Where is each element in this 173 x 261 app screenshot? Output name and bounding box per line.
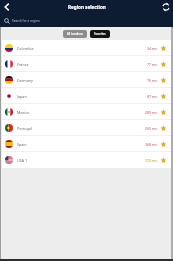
button[interactable]: Favorite [160, 157, 167, 164]
staticText: 34 ms [147, 46, 157, 51]
staticText: Germany [17, 78, 33, 83]
button[interactable]: Spain [2, 136, 171, 152]
button[interactable]: Refresh [159, 0, 173, 14]
staticText: All Locations [67, 32, 83, 36]
staticText: Japan [17, 94, 27, 99]
staticText: 172 ms [145, 158, 157, 163]
staticText: Mexico [17, 110, 30, 115]
button[interactable]: Favorite [160, 61, 167, 68]
button[interactable]: USA 1 [2, 152, 171, 168]
staticText: 76 ms [147, 78, 157, 83]
button[interactable]: Favorite [160, 93, 167, 100]
button[interactable]: Germany [2, 72, 171, 88]
staticText: Search for a region [12, 19, 40, 23]
button[interactable]: Back [0, 0, 14, 14]
button[interactable]: All Locations [63, 30, 87, 38]
staticText: 265 ms [145, 126, 157, 131]
button[interactable]: Portugal [2, 120, 171, 136]
button[interactable]: Favorites [90, 30, 110, 38]
button[interactable]: France [2, 56, 171, 72]
staticText: Spain [17, 142, 27, 147]
staticText: 289 ms [145, 110, 157, 115]
button[interactable]: Favorite [160, 141, 167, 148]
button[interactable]: Favorite [160, 125, 167, 132]
button[interactable]: Mexico [2, 104, 171, 120]
button[interactable]: Favorite [160, 77, 167, 84]
staticText: USA 1 [17, 158, 28, 163]
staticText: 77 ms [147, 62, 157, 67]
staticText: France [17, 62, 29, 67]
button[interactable]: Colombia [2, 40, 171, 56]
button[interactable]: Favorite [160, 109, 167, 116]
button[interactable]: Favorite [160, 45, 167, 52]
staticText: 368 ms [145, 142, 157, 147]
staticText: 87 ms [147, 94, 157, 99]
button[interactable]: Japan [2, 88, 171, 104]
staticText: Portugal [17, 126, 32, 131]
staticText: Favorites [94, 32, 106, 36]
staticText: Region selection [68, 4, 106, 10]
staticText: Colombia [17, 46, 34, 51]
